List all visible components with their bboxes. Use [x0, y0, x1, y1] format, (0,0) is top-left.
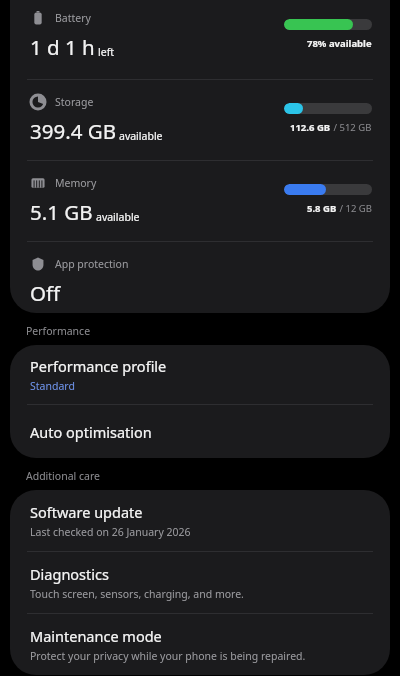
staticText: Maintenance mode: [30, 626, 162, 646]
staticText: Battery: [55, 11, 91, 25]
staticText: Diagnostics: [30, 564, 109, 584]
staticText: / 12 GB: [337, 202, 372, 215]
button[interactable]: Auto optimisation: [10, 405, 390, 458]
staticText: 399.4 GB: [30, 117, 116, 145]
staticText: 5.8 GB: [307, 202, 337, 215]
staticText: 5.1 GB: [30, 198, 93, 226]
staticText: Last checked on 26 January 2026: [30, 525, 191, 539]
staticText: available: [119, 129, 163, 143]
staticText: Auto optimisation: [30, 422, 152, 442]
staticText: Protect your privacy while your phone is…: [30, 649, 306, 663]
button[interactable]: Software update: [10, 490, 390, 551]
staticText: Off: [30, 279, 61, 307]
staticText: 78% available: [307, 37, 372, 50]
staticText: Performance: [26, 324, 91, 338]
button[interactable]: Maintenance mode: [10, 614, 390, 675]
staticText: Additional care: [26, 469, 100, 483]
button[interactable]: App protection: [10, 242, 390, 312]
staticText: Touch screen, sensors, charging, and mor…: [30, 587, 244, 601]
button[interactable]: Diagnostics: [10, 552, 390, 613]
button[interactable]: Storage: [10, 80, 390, 160]
staticText: left: [98, 45, 115, 59]
staticText: Software update: [30, 502, 143, 522]
staticText: available: [96, 210, 140, 224]
staticText: Performance profile: [30, 356, 167, 376]
button[interactable]: Performance profile: [10, 345, 390, 404]
staticText: Storage: [55, 95, 94, 109]
staticText: Standard: [30, 379, 75, 393]
button[interactable]: Memory: [10, 161, 390, 241]
staticText: Memory: [55, 176, 97, 190]
button[interactable]: Battery: [10, 0, 390, 79]
staticText: / 512 GB: [331, 121, 372, 134]
staticText: App protection: [55, 257, 129, 271]
staticText: 1 d 1 h: [30, 33, 95, 61]
staticText: 112.6 GB: [290, 121, 331, 134]
